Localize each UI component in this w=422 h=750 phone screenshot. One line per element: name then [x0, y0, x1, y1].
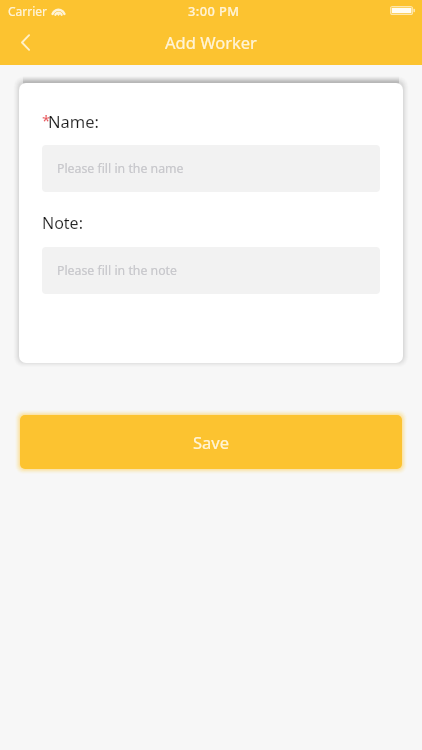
button[interactable]: Please fill in the note — [42, 247, 380, 294]
staticText: Carrier — [8, 3, 48, 19]
button[interactable]: Back — [7, 24, 44, 61]
staticText: 3:00 PM — [188, 2, 240, 19]
button[interactable]: Please fill in the name — [42, 145, 380, 192]
staticText: Note: — [42, 212, 83, 234]
staticText: Add Worker — [165, 31, 257, 53]
staticText: Save — [193, 431, 230, 453]
staticText: Please fill in the name — [57, 160, 184, 177]
button[interactable]: Save — [20, 415, 402, 469]
staticText: Please fill in the note — [57, 262, 177, 279]
staticText: Name: — [48, 110, 99, 132]
staticText: * — [42, 110, 51, 130]
